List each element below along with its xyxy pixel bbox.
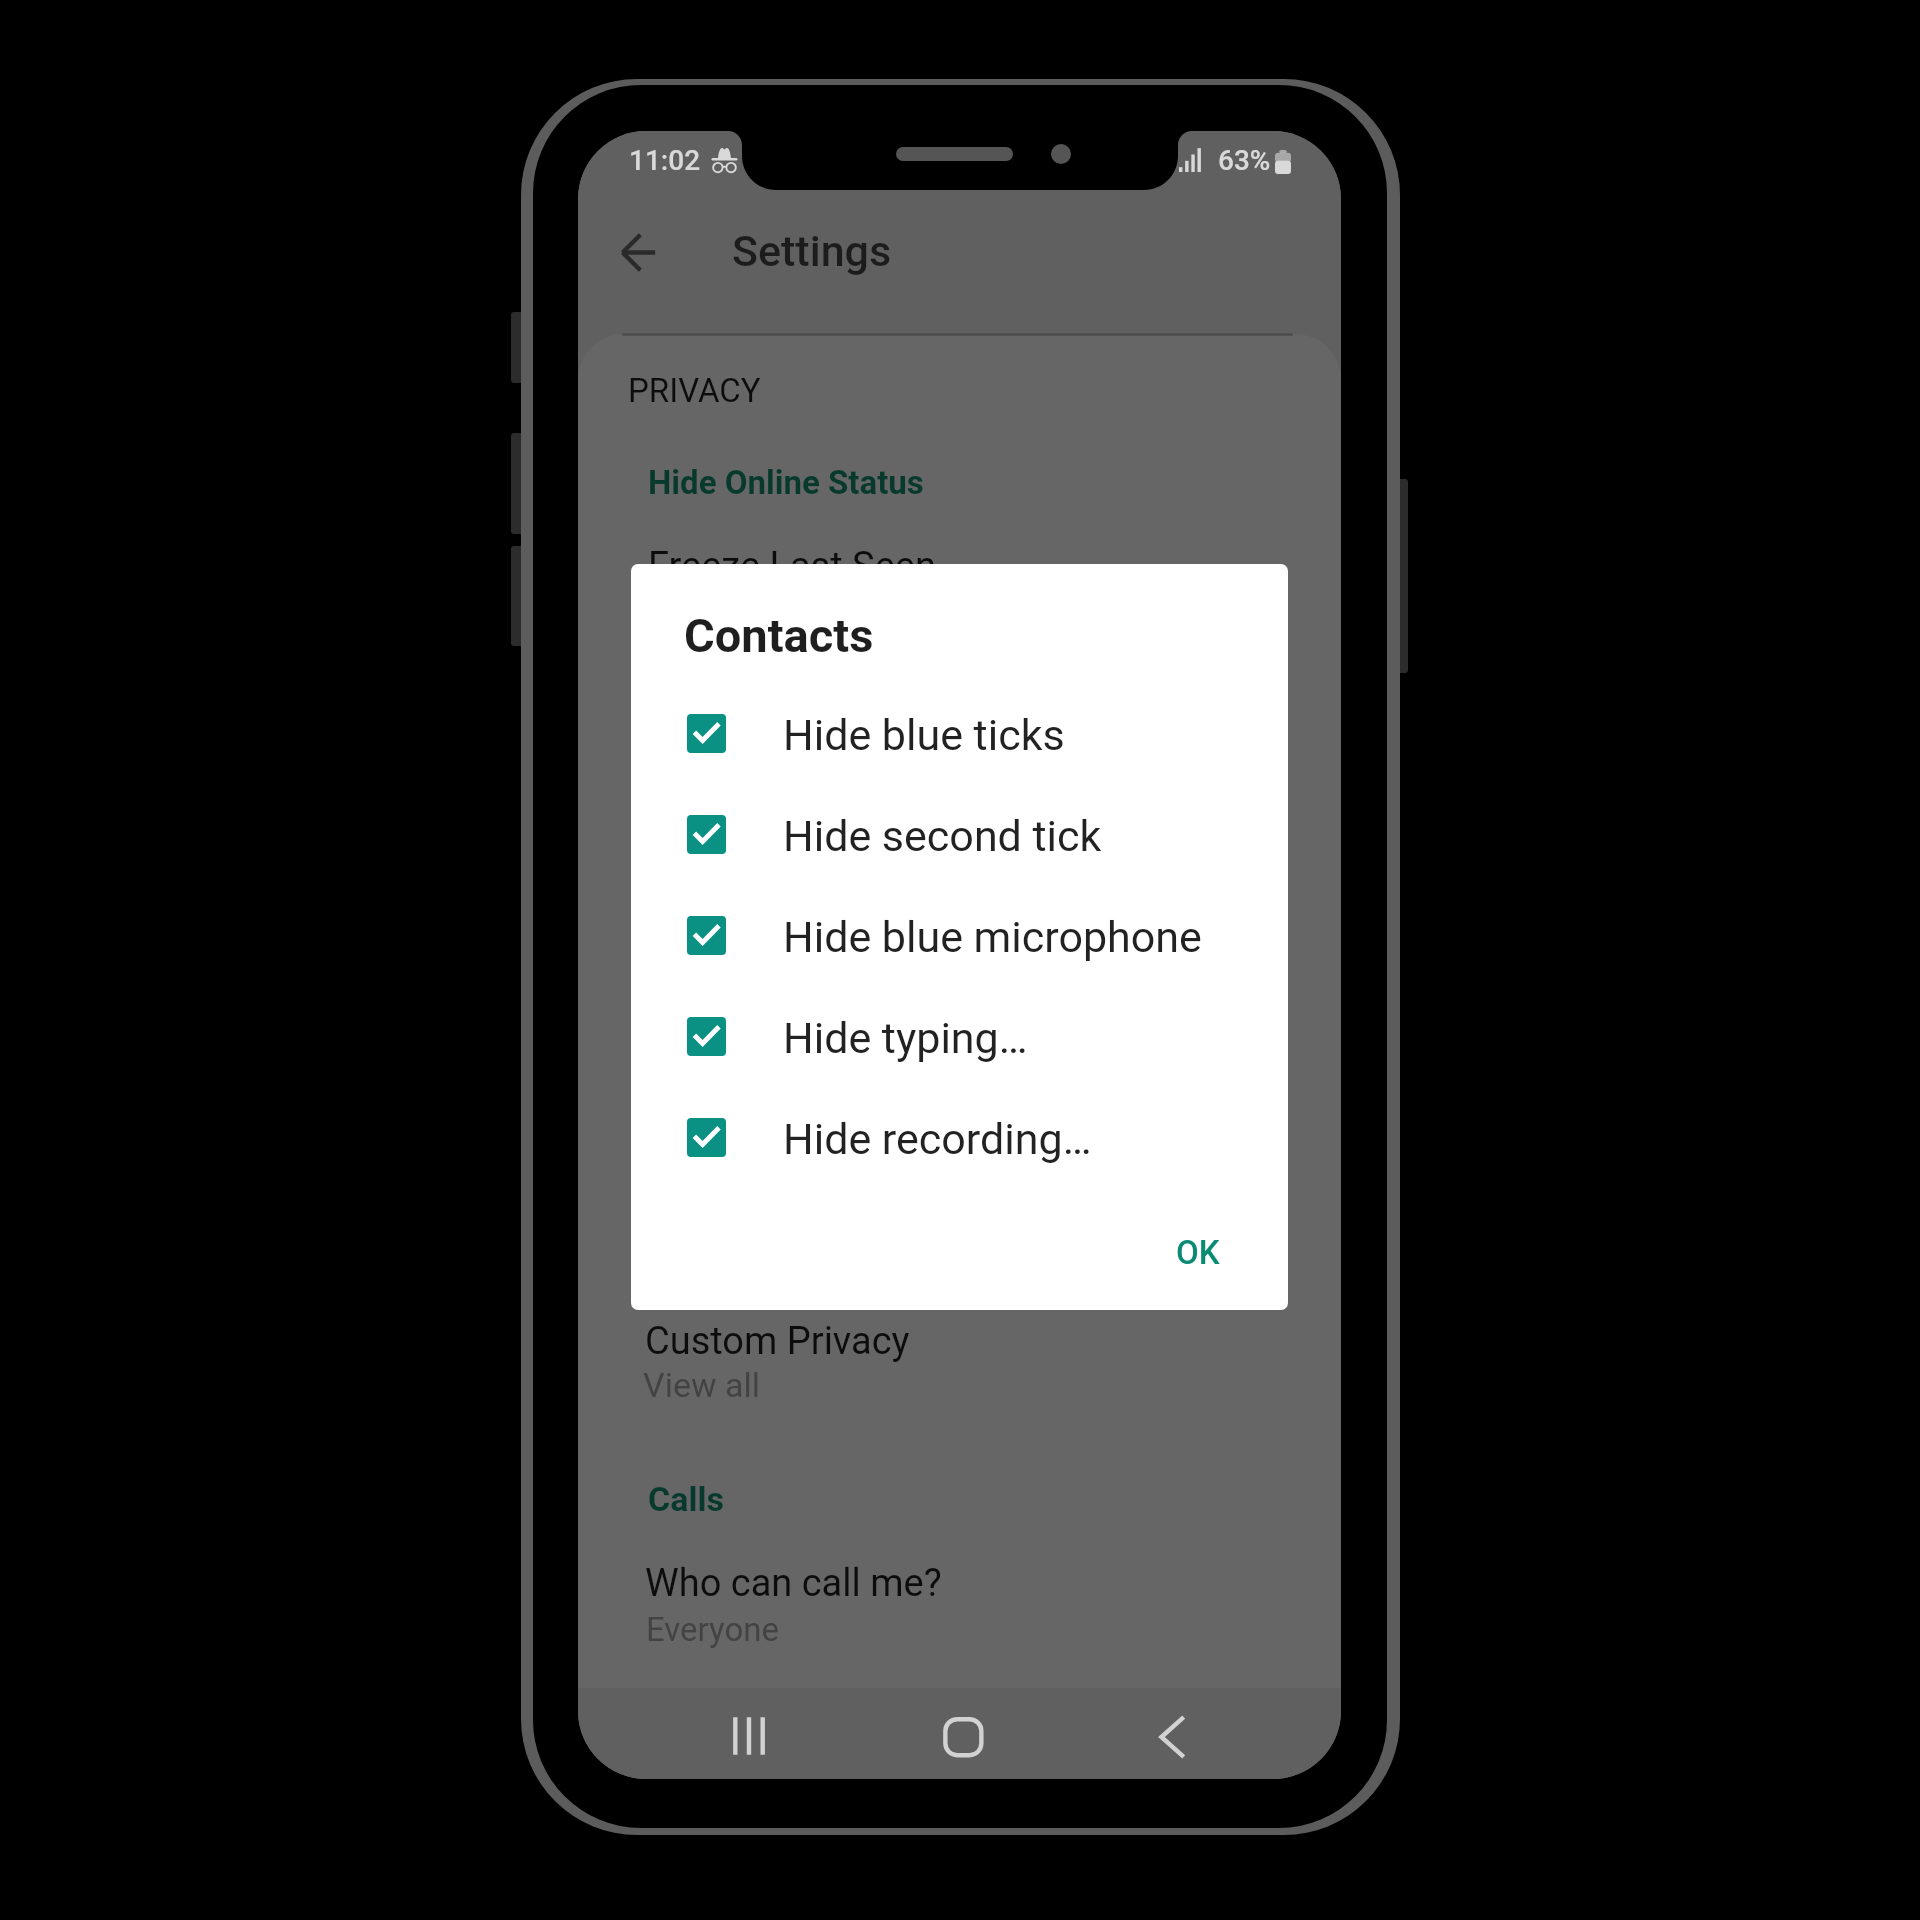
button[interactable]: Custom Privacy [578,1306,1341,1422]
staticText: Settings [732,226,892,276]
staticText: Hide blue microphone [783,912,1202,962]
staticText: Hide second tick [783,811,1102,861]
button[interactable]: Hide Online Status [578,431,1341,511]
button[interactable]: Freeze Last Seen [578,513,1341,607]
button[interactable]: OK [1134,1214,1262,1290]
staticText: Everyone [646,1610,779,1649]
staticText: Freeze Last Seen [648,544,936,589]
button[interactable]: Hide typing… [631,986,1288,1087]
button[interactable]: Who can call me? [578,1547,1341,1663]
staticText: Contacts [684,608,874,663]
staticText: View all [643,1365,760,1405]
staticText: Calls [648,1479,725,1519]
button[interactable]: Hide second tick [631,784,1288,885]
staticText: PRIVACY [628,371,761,410]
staticText: Hide typing… [783,1013,1028,1063]
staticText: Who can call me? [645,1561,942,1606]
button[interactable]: Home [927,1703,999,1775]
staticText: Hide blue ticks [783,710,1065,760]
staticText: Custom Privacy [645,1319,910,1364]
button[interactable]: Hide recording… [631,1087,1288,1188]
button[interactable]: Back [1138,1701,1210,1773]
staticText: OK [1176,1233,1220,1272]
button[interactable]: Back [602,216,674,288]
staticText: Hide recording… [783,1114,1092,1164]
staticText: Hide Online Status [648,463,924,502]
button[interactable]: Hide blue microphone [631,885,1288,986]
button[interactable]: Hide blue ticks [631,683,1288,784]
staticText: 11:02 [629,144,701,177]
button[interactable]: Recent apps [713,1700,785,1772]
staticText: 63% [1218,144,1271,177]
